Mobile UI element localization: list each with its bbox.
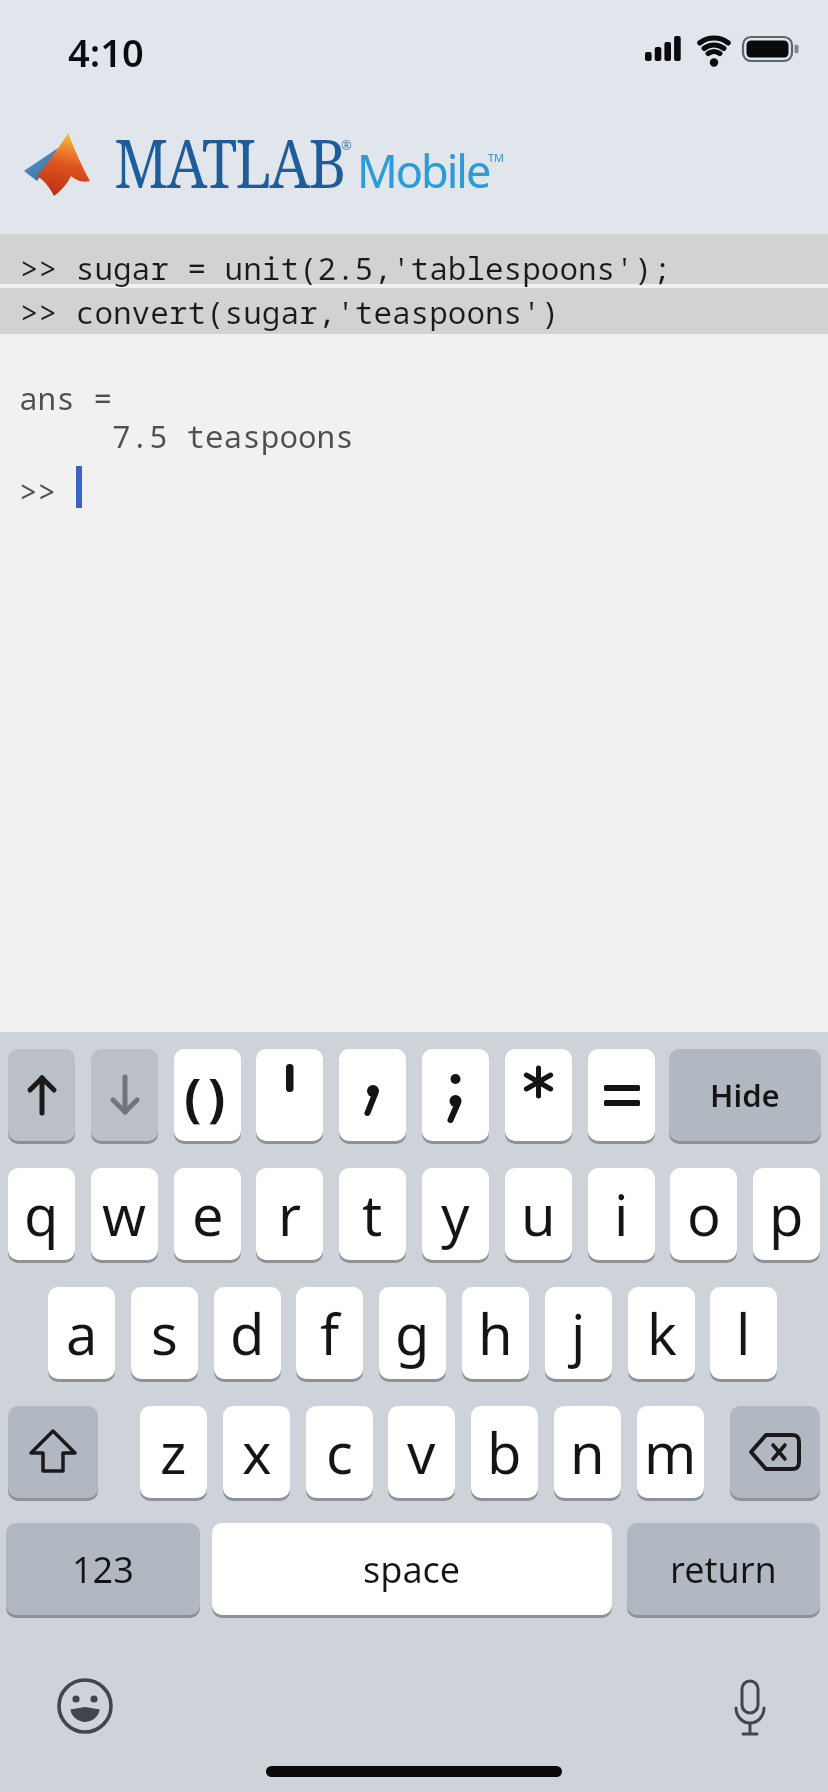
staticText: t <box>362 1176 383 1252</box>
button[interactable]: z <box>140 1406 207 1498</box>
button[interactable]: x <box>223 1406 290 1498</box>
staticText: d <box>230 1295 265 1371</box>
button[interactable]: u <box>505 1168 572 1260</box>
staticText: () <box>184 1060 232 1131</box>
staticText: TM <box>488 150 505 165</box>
staticText: Hide <box>710 1074 780 1116</box>
staticText: j <box>571 1295 586 1371</box>
button[interactable]: v <box>388 1406 455 1498</box>
button[interactable] <box>8 1406 98 1498</box>
button[interactable]: h <box>462 1287 529 1379</box>
staticText: g <box>395 1295 430 1371</box>
button[interactable]: y <box>422 1168 489 1260</box>
button[interactable] <box>732 1679 768 1741</box>
staticText: p <box>769 1176 804 1252</box>
button[interactable]: q <box>8 1168 75 1260</box>
staticText: u <box>521 1176 556 1252</box>
button[interactable]: c <box>306 1406 373 1498</box>
button[interactable]: b <box>471 1406 538 1498</box>
button[interactable]: 123 <box>6 1523 200 1615</box>
button[interactable]: return <box>627 1523 820 1615</box>
staticText: 4:10 <box>68 26 144 78</box>
staticText: 123 <box>72 1545 134 1594</box>
staticText: q <box>24 1176 59 1252</box>
button[interactable]: a <box>48 1287 115 1379</box>
button[interactable]: o <box>670 1168 737 1260</box>
staticText: MATLAB <box>114 115 345 208</box>
staticText: >> convert(sugar,'teaspoons') <box>20 291 560 333</box>
staticText: b <box>487 1414 522 1490</box>
staticText: w <box>102 1176 147 1252</box>
staticText: s <box>151 1295 178 1371</box>
staticText: 7.5 teaspoons <box>19 415 354 457</box>
button[interactable] <box>505 1049 572 1141</box>
button[interactable]: k <box>628 1287 695 1379</box>
staticText: c <box>326 1414 353 1490</box>
staticText: x <box>242 1414 272 1490</box>
button[interactable]: m <box>637 1406 704 1498</box>
staticText: e <box>192 1176 224 1252</box>
button[interactable]: r <box>256 1168 323 1260</box>
button[interactable]: w <box>91 1168 158 1260</box>
button[interactable]: i <box>588 1168 655 1260</box>
button[interactable]: e <box>174 1168 241 1260</box>
button[interactable] <box>57 1678 113 1734</box>
button[interactable] <box>91 1049 158 1141</box>
button[interactable] <box>730 1406 820 1498</box>
button[interactable]: space <box>212 1523 612 1615</box>
button[interactable]: j <box>545 1287 612 1379</box>
button[interactable] <box>422 1049 489 1141</box>
staticText: m <box>644 1414 697 1490</box>
staticText: r <box>278 1176 302 1252</box>
staticText: >> <box>19 470 57 512</box>
button[interactable]: n <box>554 1406 621 1498</box>
button[interactable] <box>339 1049 406 1141</box>
staticText: ® <box>341 136 352 154</box>
button[interactable]: s <box>131 1287 198 1379</box>
staticText: o <box>687 1176 721 1252</box>
staticText: i <box>614 1176 629 1252</box>
button[interactable] <box>588 1049 655 1141</box>
button[interactable]: p <box>753 1168 820 1260</box>
button[interactable]: g <box>379 1287 446 1379</box>
staticText: >> sugar = unit(2.5,'tablespoons'); <box>20 247 671 289</box>
staticText: z <box>160 1414 187 1490</box>
button[interactable] <box>8 1049 75 1141</box>
staticText: Mobile <box>357 140 490 201</box>
staticText: f <box>320 1295 340 1371</box>
button[interactable]: f <box>296 1287 363 1379</box>
staticText: space <box>363 1545 461 1594</box>
button[interactable]: t <box>339 1168 406 1260</box>
staticText: l <box>736 1295 751 1371</box>
staticText: n <box>570 1414 605 1490</box>
button[interactable]: l <box>710 1287 777 1379</box>
button[interactable]: d <box>214 1287 281 1379</box>
staticText: y <box>441 1176 470 1252</box>
staticText: return <box>670 1545 777 1594</box>
button[interactable]: () <box>174 1049 241 1141</box>
button[interactable]: Hide <box>669 1049 821 1141</box>
staticText: v <box>407 1414 436 1490</box>
staticText: a <box>66 1295 98 1371</box>
button[interactable] <box>256 1049 323 1141</box>
staticText: h <box>478 1295 513 1371</box>
staticText: ans = <box>19 377 112 419</box>
staticText: k <box>647 1295 677 1371</box>
